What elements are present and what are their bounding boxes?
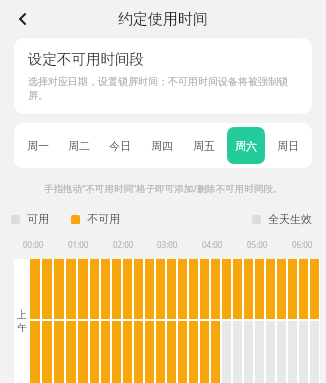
staticText: 约定使用时间	[118, 10, 208, 29]
button[interactable]: 全天生效	[252, 212, 319, 226]
staticText: 周五	[193, 139, 215, 153]
staticText: 上 午	[17, 308, 27, 334]
staticText: 02:00	[113, 239, 134, 250]
staticText: 06:00	[292, 239, 313, 250]
staticText: 手指拖动“不可用时间”格子即可添加/删除不可用时间段。	[44, 182, 283, 195]
staticText: 今日	[109, 139, 131, 153]
staticText: 周四	[151, 139, 173, 153]
button[interactable]: 周一	[19, 127, 56, 164]
button[interactable]: Back	[6, 2, 40, 36]
staticText: 周日	[277, 139, 299, 153]
button[interactable]: 周四	[143, 127, 181, 164]
staticText: 00:00	[23, 239, 44, 250]
staticText: 周二	[68, 139, 90, 153]
button[interactable]: 可用	[7, 210, 53, 228]
staticText: 不可用	[87, 212, 120, 226]
staticText: 01:00	[68, 239, 89, 250]
button[interactable]: 周二	[60, 127, 97, 164]
staticText: 04:00	[202, 239, 223, 250]
staticText: 设定不可用时间段	[28, 50, 144, 68]
staticText: 可用	[27, 212, 49, 226]
button[interactable]: 今日	[101, 127, 139, 164]
button[interactable]: 周六	[227, 127, 265, 164]
button[interactable]: 不可用	[67, 210, 124, 228]
staticText: 周六	[235, 139, 257, 153]
staticText: 05:00	[247, 239, 268, 250]
staticText: 03:00	[157, 239, 178, 250]
staticText: 周一	[27, 139, 49, 153]
button[interactable]: 周日	[269, 127, 307, 164]
button[interactable]: 设定不可用时间段	[14, 38, 312, 114]
staticText: 选择对应日期，设置锁屏时间；不可用时间设备将被强制锁屏。	[28, 75, 298, 102]
button[interactable]: 周五	[185, 127, 223, 164]
staticText: 全天生效	[268, 212, 312, 226]
